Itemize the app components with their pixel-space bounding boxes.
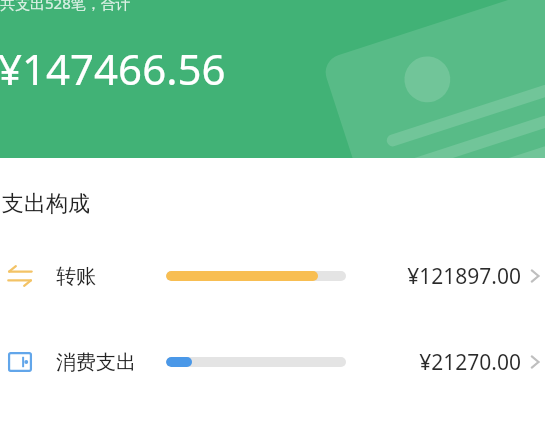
staticText: 共支出528笔，合计	[0, 0, 131, 13]
button[interactable]: Transfer	[0, 256, 545, 296]
staticText: ¥121897.00	[407, 262, 521, 291]
staticText: ¥147466.56	[0, 40, 226, 97]
other: Transfer	[0, 256, 40, 296]
staticText: ¥21270.00	[419, 348, 521, 377]
button[interactable]: Consumption	[0, 342, 545, 382]
staticText: 消费支出	[56, 350, 166, 375]
staticText: 支出构成	[2, 190, 90, 218]
staticText: 转账	[56, 264, 166, 289]
other: Consumption	[0, 342, 40, 382]
